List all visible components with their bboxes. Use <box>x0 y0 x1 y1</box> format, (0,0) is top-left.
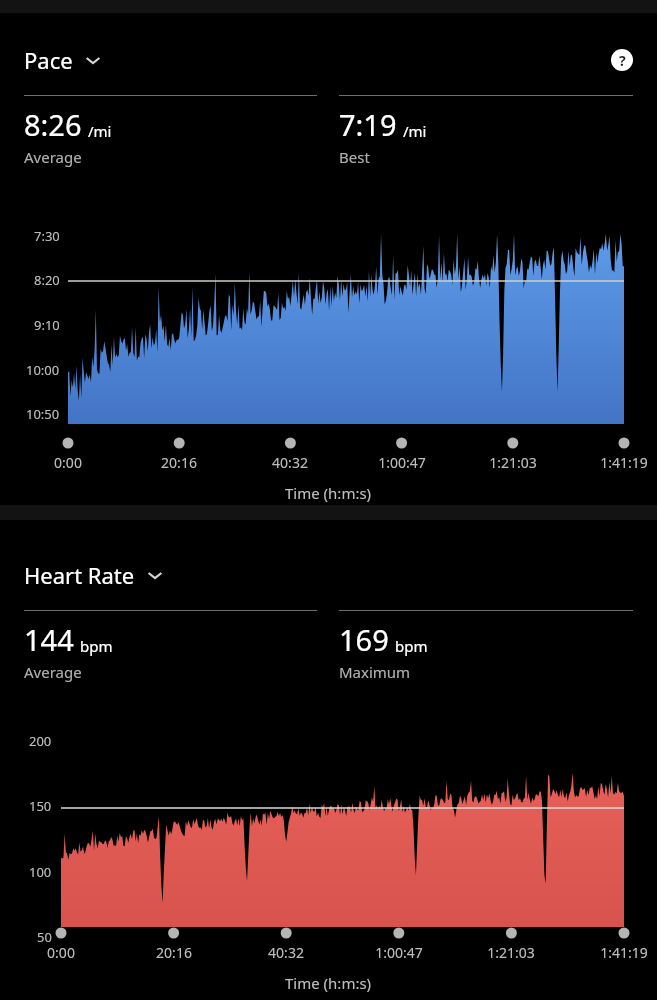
staticText: 169 <box>339 620 389 659</box>
staticText: Average <box>24 662 82 682</box>
staticText: 10:50 <box>26 405 60 423</box>
button[interactable]: Heart Rate <box>24 560 165 590</box>
button[interactable]: 7:19 <box>339 95 633 167</box>
staticText: ? <box>619 51 626 70</box>
staticText: 0:00 <box>47 943 75 962</box>
staticText: 150 <box>29 797 52 815</box>
staticText: 9:10 <box>34 316 60 334</box>
staticText: 7:19 <box>339 105 397 144</box>
staticText: 100 <box>29 863 52 881</box>
staticText: 50 <box>37 928 52 946</box>
staticText: 20:16 <box>156 943 192 962</box>
staticText: 20:16 <box>161 453 197 472</box>
staticText: /mi <box>403 121 427 141</box>
staticText: bpm <box>395 636 428 656</box>
staticText: Pace <box>24 45 73 75</box>
staticText: Best <box>339 147 370 167</box>
staticText: Time (h:m:s) <box>285 483 372 503</box>
staticText: 1:00:47 <box>375 943 423 962</box>
staticText: 8:20 <box>34 271 60 289</box>
staticText: bpm <box>80 636 113 656</box>
staticText: 0:00 <box>54 453 82 472</box>
staticText: Heart Rate <box>24 560 135 590</box>
button[interactable]: 169 <box>339 610 633 682</box>
staticText: Average <box>24 147 82 167</box>
staticText: 40:32 <box>268 943 304 962</box>
button[interactable]: Pace <box>24 45 103 75</box>
staticText: 10:00 <box>26 361 60 379</box>
staticText: 1:21:03 <box>489 453 537 472</box>
staticText: 1:21:03 <box>487 943 535 962</box>
button[interactable]: 8:26 <box>24 95 317 167</box>
staticText: 40:32 <box>272 453 308 472</box>
staticText: Time (h:m:s) <box>285 973 372 993</box>
button[interactable]: 144 <box>24 610 317 682</box>
staticText: 1:41:19 <box>600 453 648 472</box>
staticText: 200 <box>29 732 52 750</box>
staticText: 7:30 <box>34 227 60 245</box>
staticText: /mi <box>88 121 112 141</box>
staticText: 8:26 <box>24 105 82 144</box>
staticText: 1:00:47 <box>378 453 426 472</box>
staticText: 144 <box>24 620 74 659</box>
staticText: 1:41:19 <box>600 943 648 962</box>
staticText: Maximum <box>339 662 411 682</box>
button[interactable]: Help <box>609 47 635 73</box>
